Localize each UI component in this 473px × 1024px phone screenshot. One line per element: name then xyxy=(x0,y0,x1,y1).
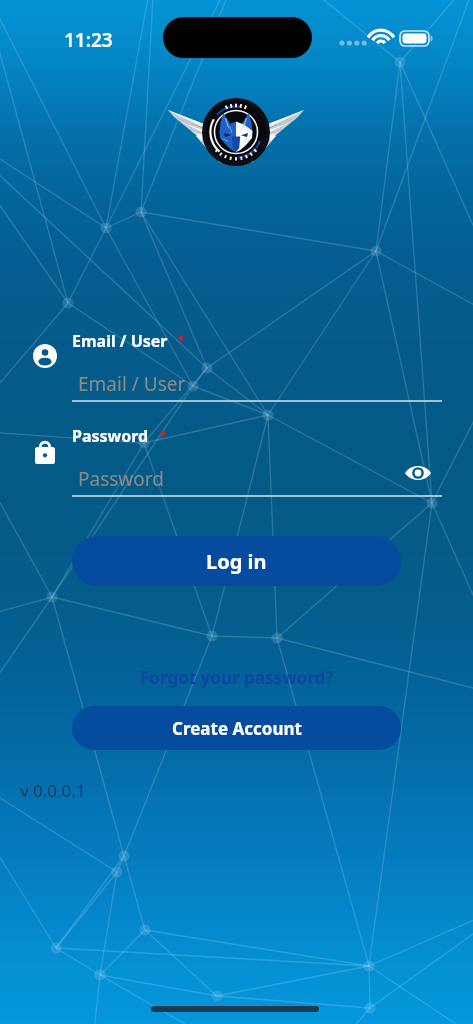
staticText: Forgot your password? xyxy=(140,666,334,689)
staticText: Email / User xyxy=(78,371,186,397)
staticText: Create Account xyxy=(172,717,302,740)
button[interactable]: Create Account xyxy=(72,706,401,750)
staticText: Email / User xyxy=(72,330,168,352)
button[interactable]: Show password xyxy=(399,455,436,491)
button[interactable]: Password xyxy=(72,463,402,497)
staticText: 11:23 xyxy=(64,27,113,53)
other: User xyxy=(33,344,57,368)
button[interactable]: Forgot your password? xyxy=(72,663,401,691)
button[interactable]: Log in xyxy=(72,536,401,586)
staticText: Password xyxy=(78,466,164,492)
staticText: Log in xyxy=(206,548,267,575)
staticText: Password xyxy=(72,425,149,447)
staticText: v 0.0.0.1 xyxy=(20,779,86,802)
button[interactable]: Email / User xyxy=(72,368,442,402)
other: Password xyxy=(35,438,55,464)
